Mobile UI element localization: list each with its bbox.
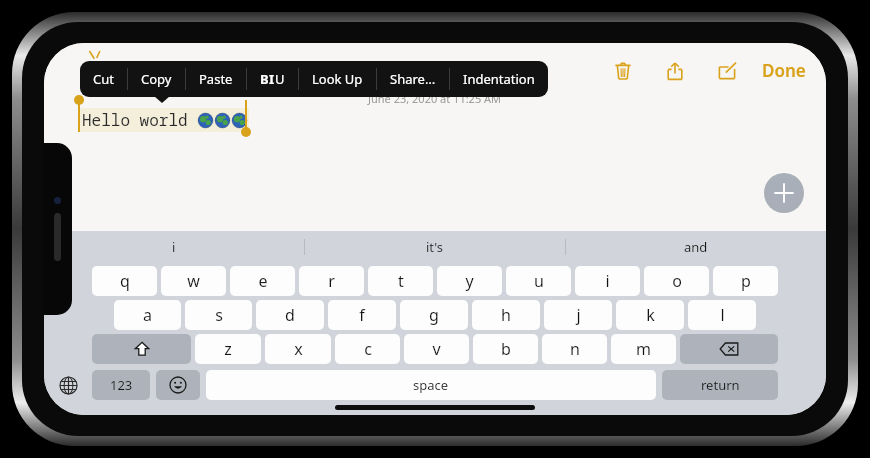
- button[interactable]: l: [688, 300, 756, 330]
- button[interactable]: i: [44, 231, 304, 263]
- staticText: q: [120, 270, 130, 292]
- staticText: f: [359, 304, 365, 326]
- button[interactable]: Shift: [92, 334, 191, 364]
- staticText: m: [636, 338, 651, 360]
- staticText: Look Up: [312, 70, 363, 88]
- staticText: June 23, 2020 at 11:25 AM: [368, 91, 502, 106]
- button[interactable]: z: [195, 334, 261, 364]
- button[interactable]: h: [472, 300, 540, 330]
- staticText: c: [364, 338, 372, 360]
- button[interactable]: g: [400, 300, 468, 330]
- staticText: Hello world: [82, 109, 198, 131]
- staticText: Indentation: [463, 70, 535, 88]
- staticText: Share…: [390, 70, 436, 88]
- button[interactable]: y: [437, 266, 502, 296]
- button[interactable]: o: [644, 266, 709, 296]
- staticText: l: [720, 304, 725, 326]
- button[interactable]: B: [247, 61, 298, 97]
- staticText: Paste: [199, 70, 233, 88]
- staticText: s: [215, 304, 223, 326]
- button[interactable]: Paste: [186, 61, 246, 97]
- button[interactable]: Compose: [712, 56, 742, 86]
- staticText: p: [741, 270, 751, 292]
- button[interactable]: Share…: [377, 61, 449, 97]
- button[interactable]: f: [328, 300, 396, 330]
- button[interactable]: Change keyboard: [44, 370, 92, 400]
- staticText: e: [258, 270, 268, 292]
- button[interactable]: space: [206, 370, 656, 400]
- button[interactable]: k: [616, 300, 684, 330]
- staticText: d: [285, 304, 295, 326]
- button[interactable]: i: [575, 266, 640, 296]
- button[interactable]: 123: [92, 370, 150, 400]
- button[interactable]: j: [544, 300, 612, 330]
- button[interactable]: r: [299, 266, 364, 296]
- button[interactable]: Indentation: [450, 61, 548, 97]
- button[interactable]: d: [256, 300, 324, 330]
- staticText: j: [576, 304, 581, 326]
- button[interactable]: w: [161, 266, 226, 296]
- button[interactable]: n: [542, 334, 607, 364]
- staticText: r: [328, 270, 335, 292]
- staticText: x: [294, 338, 303, 360]
- staticText: h: [501, 304, 511, 326]
- button[interactable]: Share: [660, 56, 690, 86]
- staticText: u: [534, 270, 544, 292]
- button[interactable]: Emoji: [156, 370, 200, 400]
- button[interactable]: x: [265, 334, 331, 364]
- staticText: B: [260, 70, 269, 88]
- staticText: and: [684, 238, 708, 256]
- staticText: y: [465, 270, 474, 292]
- staticText: n: [570, 338, 580, 360]
- staticText: b: [501, 338, 511, 360]
- button[interactable]: v: [404, 334, 469, 364]
- staticText: I: [269, 70, 275, 88]
- staticText: Copy: [141, 70, 172, 88]
- button[interactable]: t: [368, 266, 433, 296]
- button[interactable]: c: [335, 334, 400, 364]
- button[interactable]: Look Up: [299, 61, 376, 97]
- button[interactable]: Done: [756, 53, 812, 88]
- button[interactable]: Backspace: [680, 334, 778, 364]
- staticText: i: [172, 238, 176, 256]
- staticText: g: [429, 304, 439, 326]
- button[interactable]: Cut: [80, 61, 127, 97]
- staticText: U: [275, 70, 285, 88]
- staticText: a: [143, 304, 152, 326]
- staticText: it's: [426, 238, 444, 256]
- button[interactable]: return: [662, 370, 778, 400]
- staticText: Done: [762, 59, 806, 82]
- staticText: o: [672, 270, 682, 292]
- button[interactable]: b: [473, 334, 538, 364]
- button[interactable]: a: [114, 300, 181, 330]
- staticText: 123: [110, 376, 133, 394]
- button[interactable]: and: [566, 231, 826, 263]
- button[interactable]: s: [185, 300, 252, 330]
- staticText: k: [646, 304, 655, 326]
- button[interactable]: e: [230, 266, 295, 296]
- button[interactable]: m: [611, 334, 676, 364]
- staticText: v: [432, 338, 441, 360]
- staticText: z: [224, 338, 232, 360]
- button[interactable]: Copy: [128, 61, 185, 97]
- button[interactable]: Add: [764, 173, 804, 213]
- staticText: space: [413, 376, 449, 394]
- button[interactable]: it's: [305, 231, 565, 263]
- staticText: w: [187, 270, 200, 292]
- staticText: return: [701, 376, 740, 394]
- staticText: i: [605, 270, 610, 292]
- button[interactable]: p: [713, 266, 778, 296]
- button[interactable]: Delete: [608, 56, 638, 86]
- button[interactable]: u: [506, 266, 571, 296]
- staticText: t: [398, 270, 404, 292]
- staticText: Cut: [93, 70, 114, 88]
- button[interactable]: q: [92, 266, 157, 296]
